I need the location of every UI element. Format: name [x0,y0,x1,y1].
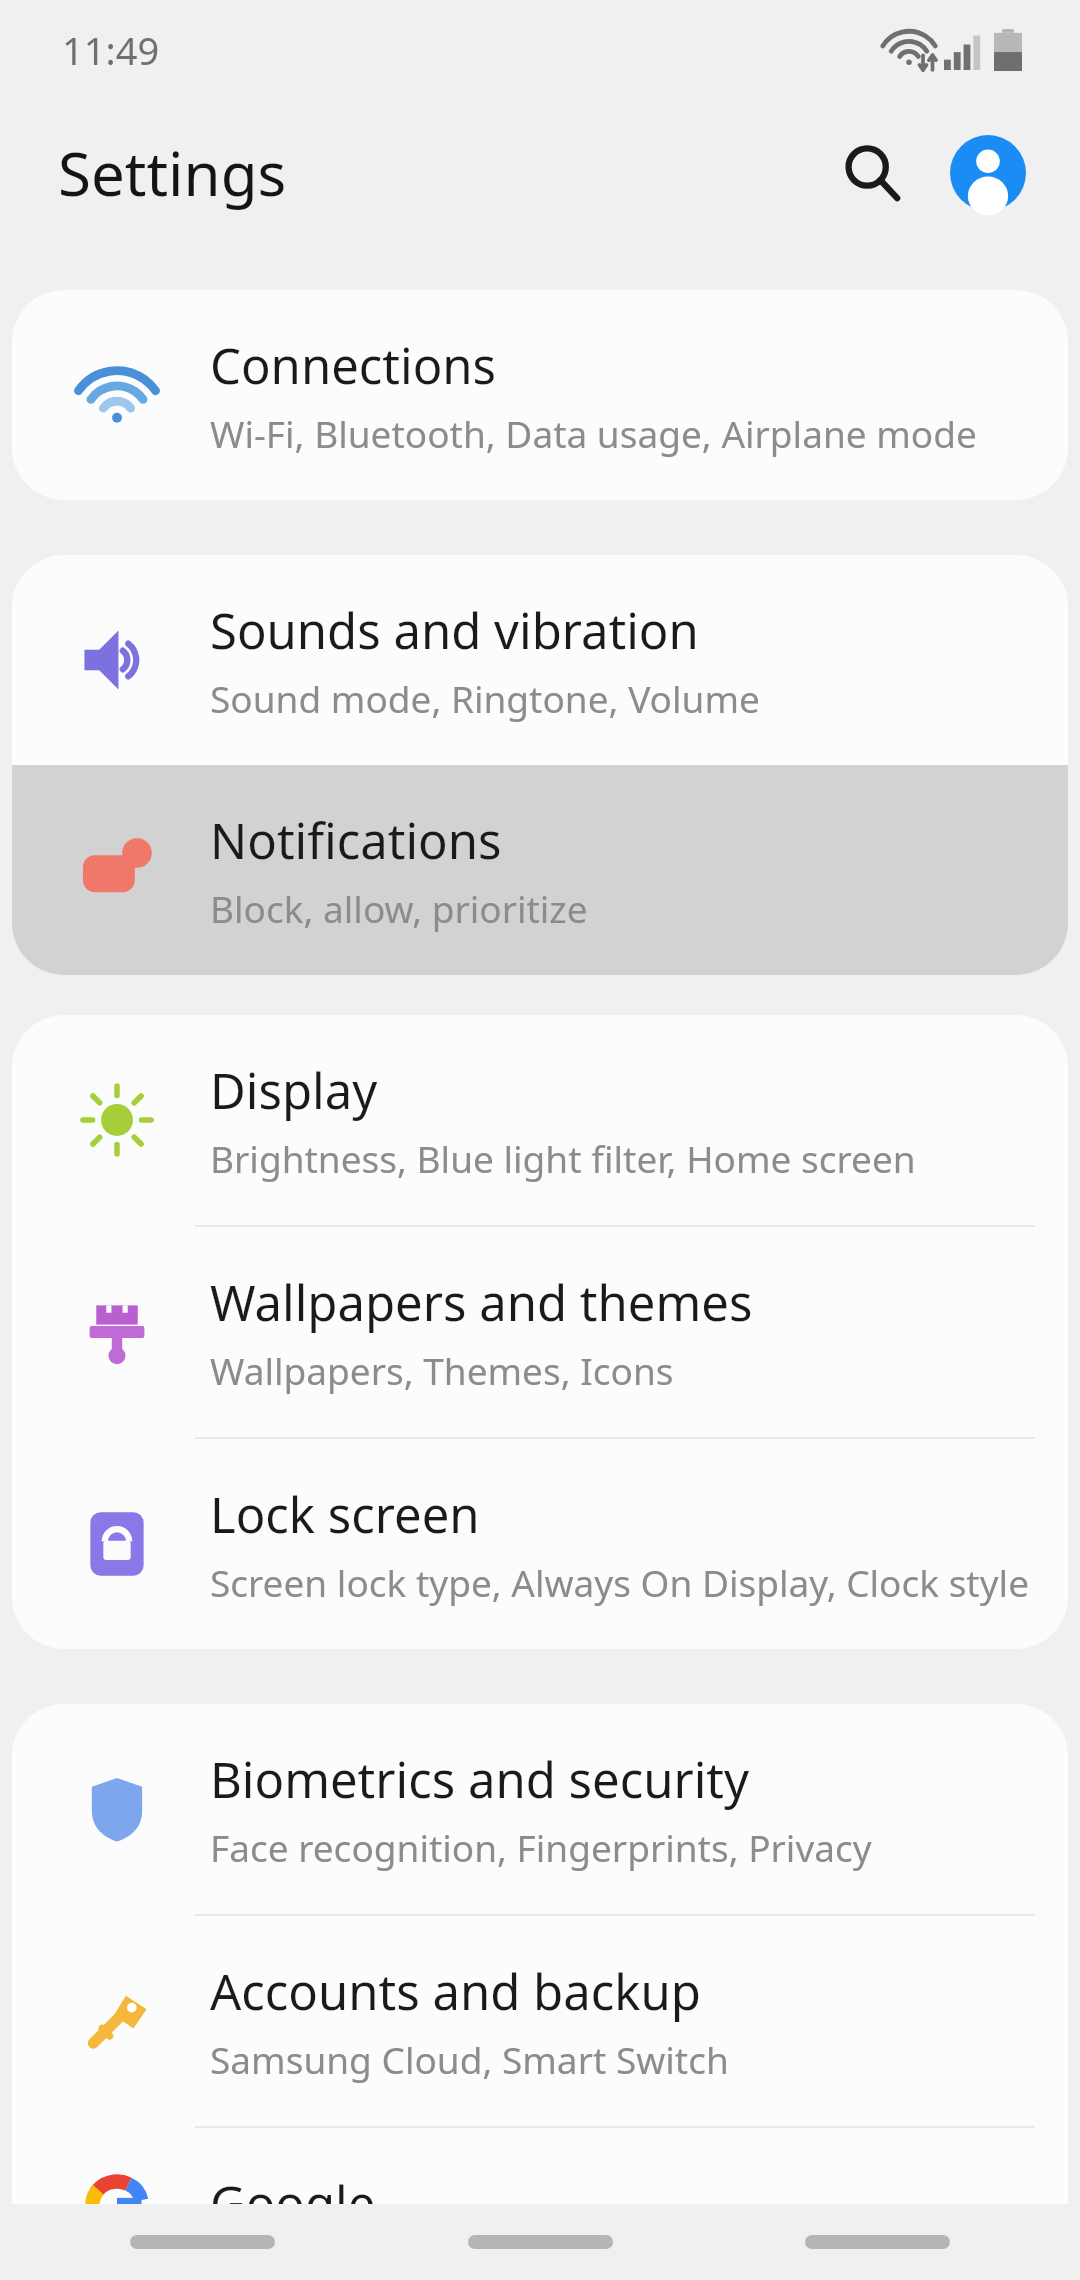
button[interactable]: Search [824,125,920,221]
staticText: Notifications [210,807,502,874]
button[interactable]: Display [12,1015,1068,1225]
staticText: Sounds and vibration [210,597,699,664]
button[interactable]: Wallpapers and themes [12,1227,1068,1437]
staticText: Brightness, Blue light filter, Home scre… [210,1133,916,1183]
staticText: Wi-Fi, Bluetooth, Data usage, Airplane m… [210,408,977,458]
button[interactable]: Accounts and backup [12,1916,1068,2126]
staticText: Face recognition, Fingerprints, Privacy [210,1822,872,1872]
button[interactable]: Lock screen [12,1439,1068,1649]
button[interactable]: Google [12,2128,1068,2280]
staticText: Google [210,2170,376,2237]
staticText: Settings [58,132,287,214]
staticText: Connections [210,332,497,399]
button[interactable]: Navigation [805,2235,950,2249]
button[interactable]: Connections [12,290,1068,500]
button[interactable]: Navigation [130,2235,275,2249]
button[interactable]: Biometrics and security [12,1704,1068,1914]
staticText: Display [210,1057,378,1124]
staticText: Wallpapers, Themes, Icons [210,1345,674,1395]
staticText: Wallpapers and themes [210,1269,753,1336]
button[interactable]: Sounds and vibration [12,555,1068,765]
button[interactable]: Notifications [12,765,1068,975]
staticText: Biometrics and security [210,1746,750,1813]
button[interactable]: Navigation [468,2235,613,2249]
staticText: Lock screen [210,1481,480,1548]
staticText: Sound mode, Ringtone, Volume [210,673,760,723]
staticText: Block, allow, prioritize [210,883,588,933]
staticText: Samsung Cloud, Smart Switch [210,2034,729,2084]
staticText: 11:49 [62,24,160,76]
staticText: Screen lock type, Always On Display, Clo… [210,1557,1029,1607]
staticText: Accounts and backup [210,1958,701,2025]
button[interactable]: Account [940,125,1036,221]
